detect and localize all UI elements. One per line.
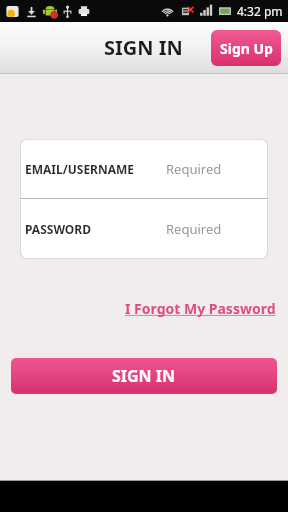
- staticText: SIGN IN: [104, 34, 183, 61]
- staticText: SIGN IN: [112, 365, 176, 387]
- button[interactable]: SIGN IN: [11, 358, 277, 394]
- button[interactable]: I Forgot My Password: [123, 297, 278, 320]
- staticText: EMAIL/USERNAME: [25, 161, 135, 177]
- staticText: PASSWORD: [25, 221, 92, 237]
- staticText: Required: [166, 160, 222, 178]
- staticText: Sign Up: [220, 39, 273, 58]
- button[interactable]: PASSWORD: [20, 199, 268, 258]
- staticText: Required: [166, 220, 222, 238]
- staticText: I Forgot My Password: [125, 299, 276, 318]
- staticText: 4:32 pm: [237, 3, 283, 19]
- button[interactable]: Sign Up: [211, 30, 281, 66]
- button[interactable]: EMAIL/USERNAME: [20, 139, 268, 198]
